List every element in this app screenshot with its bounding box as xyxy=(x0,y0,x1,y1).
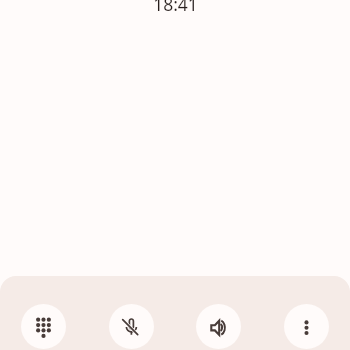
button[interactable]: Dialpad xyxy=(21,304,66,349)
button[interactable]: Speaker xyxy=(196,304,241,349)
button[interactable]: More options xyxy=(284,304,329,349)
staticText: 18:41 xyxy=(153,0,198,16)
button[interactable]: Mute xyxy=(109,304,154,349)
